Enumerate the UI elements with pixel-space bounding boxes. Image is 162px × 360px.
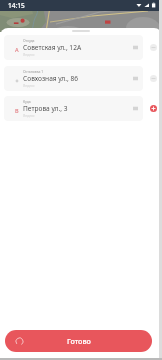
button[interactable]: Готово	[5, 330, 152, 352]
staticText: Откуда	[23, 38, 35, 43]
button[interactable]: Add stop	[150, 105, 157, 112]
staticText: Готово	[67, 336, 91, 346]
staticText: Советская ул., 12А	[23, 43, 82, 52]
button[interactable]: Remove stop	[150, 44, 157, 51]
button[interactable]: Remove stop	[150, 75, 157, 82]
button[interactable]: Reorder stop	[127, 35, 143, 60]
staticText: Куда	[23, 99, 31, 104]
button[interactable]: Reorder stop	[127, 96, 143, 121]
staticText: B	[15, 107, 19, 114]
button[interactable]: Остановка 1	[4, 66, 143, 91]
staticText: Яндекс	[23, 52, 35, 57]
staticText: Остановка 1	[23, 69, 44, 74]
staticText: Яндекс	[23, 113, 35, 118]
staticText: A	[15, 46, 19, 53]
button[interactable]: Reset route	[14, 336, 25, 347]
staticText: Совхозная ул., 86	[23, 74, 79, 83]
button[interactable]: Reorder stop	[127, 66, 143, 91]
staticText: Яндекс	[23, 83, 35, 88]
staticText: Петрова ул., 3	[23, 104, 68, 113]
button[interactable]: A	[4, 35, 143, 60]
staticText: 14:15	[8, 1, 25, 10]
button[interactable]: B	[4, 96, 143, 121]
